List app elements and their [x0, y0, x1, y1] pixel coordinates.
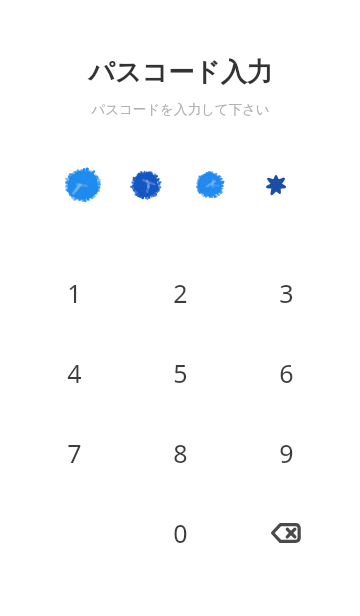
- staticText: 7: [67, 436, 82, 470]
- staticText: 8: [173, 436, 188, 470]
- button[interactable]: 4: [21, 333, 127, 413]
- button[interactable]: 7: [21, 413, 127, 493]
- staticText: 1: [67, 276, 82, 310]
- staticText: 6: [279, 356, 294, 390]
- staticText: 5: [173, 356, 188, 390]
- staticText: パスコード入力: [88, 56, 273, 89]
- button[interactable]: 3: [233, 253, 339, 333]
- button[interactable]: 8: [127, 413, 233, 493]
- staticText: 0: [173, 516, 188, 550]
- button[interactable]: 6: [233, 333, 339, 413]
- button[interactable]: 5: [127, 333, 233, 413]
- button[interactable]: 2: [127, 253, 233, 333]
- button[interactable]: Backspace: [233, 493, 339, 573]
- staticText: 2: [173, 276, 188, 310]
- button[interactable]: 9: [233, 413, 339, 493]
- staticText: パスコードを入力して下さい: [91, 101, 270, 118]
- button[interactable]: 1: [21, 253, 127, 333]
- staticText: 3: [279, 276, 294, 310]
- staticText: 4: [67, 356, 82, 390]
- button[interactable]: 0: [127, 493, 233, 573]
- staticText: 9: [279, 436, 294, 470]
